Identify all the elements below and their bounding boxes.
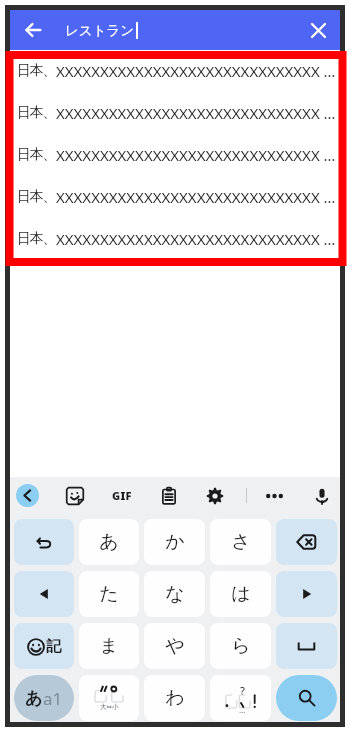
staticText: ら bbox=[231, 634, 251, 658]
button[interactable]: 日本、 bbox=[10, 218, 340, 260]
button[interactable]: Key bbox=[144, 675, 205, 721]
staticText: 日本、 bbox=[17, 62, 56, 80]
staticText: 日本、 bbox=[17, 104, 56, 122]
button[interactable]: Stickers bbox=[62, 477, 88, 514]
button[interactable]: More options bbox=[263, 477, 285, 514]
staticText: さ bbox=[231, 530, 251, 554]
button[interactable]: Clipboard bbox=[156, 477, 182, 514]
staticText: ? bbox=[240, 683, 245, 698]
staticText: か bbox=[165, 530, 185, 554]
button[interactable]: Undo bbox=[14, 519, 74, 565]
staticText: 日本、 bbox=[17, 230, 56, 248]
button[interactable]: Input mode bbox=[14, 675, 74, 721]
button[interactable]: Key bbox=[210, 571, 271, 617]
button[interactable]: Cursor left bbox=[14, 571, 74, 617]
button[interactable]: Key bbox=[210, 519, 271, 565]
button[interactable]: Emoji bbox=[14, 623, 74, 669]
staticText: た bbox=[99, 582, 119, 606]
staticText: あ bbox=[99, 530, 119, 554]
staticText: レストラン bbox=[65, 22, 135, 39]
button[interactable]: Key bbox=[144, 623, 205, 669]
button[interactable]: GIF bbox=[107, 477, 137, 514]
button[interactable]: Back bbox=[20, 10, 45, 50]
staticText: 大⇔小 bbox=[100, 703, 119, 711]
button[interactable]: Key bbox=[144, 519, 205, 565]
button[interactable]: Key bbox=[144, 571, 205, 617]
staticText: な bbox=[165, 582, 185, 606]
staticText: a1 bbox=[43, 687, 63, 710]
button[interactable]: Settings bbox=[202, 477, 228, 514]
staticText: XXXXXXXXXXXXXXXXXXXXXXXXXXXXXX … bbox=[56, 187, 336, 207]
staticText: XXXXXXXXXXXXXXXXXXXXXXXXXXXXXX … bbox=[56, 229, 336, 249]
staticText: GIF bbox=[112, 488, 132, 503]
button[interactable]: Backspace bbox=[276, 519, 337, 565]
button[interactable]: Cursor right bbox=[276, 571, 337, 617]
button[interactable]: Clear text bbox=[304, 10, 332, 50]
button[interactable]: 日本、 bbox=[10, 92, 340, 134]
staticText: 記 bbox=[46, 637, 61, 656]
staticText: あ bbox=[25, 688, 43, 709]
staticText: は bbox=[231, 582, 251, 606]
button[interactable]: Collapse suggestions bbox=[11, 477, 43, 514]
staticText: XXXXXXXXXXXXXXXXXXXXXXXXXXXXXX … bbox=[56, 103, 336, 123]
button[interactable]: Space bbox=[276, 623, 337, 669]
staticText: … bbox=[239, 704, 246, 715]
button[interactable]: Key bbox=[79, 571, 139, 617]
staticText: 日本、 bbox=[17, 188, 56, 206]
staticText: 日本、 bbox=[17, 146, 56, 164]
button[interactable]: Punctuation bbox=[210, 675, 271, 721]
button[interactable]: 日本、 bbox=[10, 134, 340, 176]
button[interactable]: Key bbox=[210, 623, 271, 669]
button[interactable]: 日本、 bbox=[10, 176, 340, 218]
staticText: XXXXXXXXXXXXXXXXXXXXXXXXXXXXXX … bbox=[56, 61, 336, 81]
button[interactable]: 日本、 bbox=[10, 50, 340, 92]
button[interactable]: Key bbox=[79, 623, 139, 669]
staticText: XXXXXXXXXXXXXXXXXXXXXXXXXXXXXX … bbox=[56, 145, 336, 165]
staticText: ま bbox=[99, 634, 119, 658]
button[interactable]: Search bbox=[276, 675, 337, 721]
staticText: や bbox=[165, 634, 185, 658]
button[interactable]: Dakuten bbox=[79, 675, 139, 721]
button[interactable]: Key bbox=[79, 519, 139, 565]
button[interactable]: Voice input bbox=[309, 477, 335, 514]
staticText: わ bbox=[165, 686, 185, 710]
